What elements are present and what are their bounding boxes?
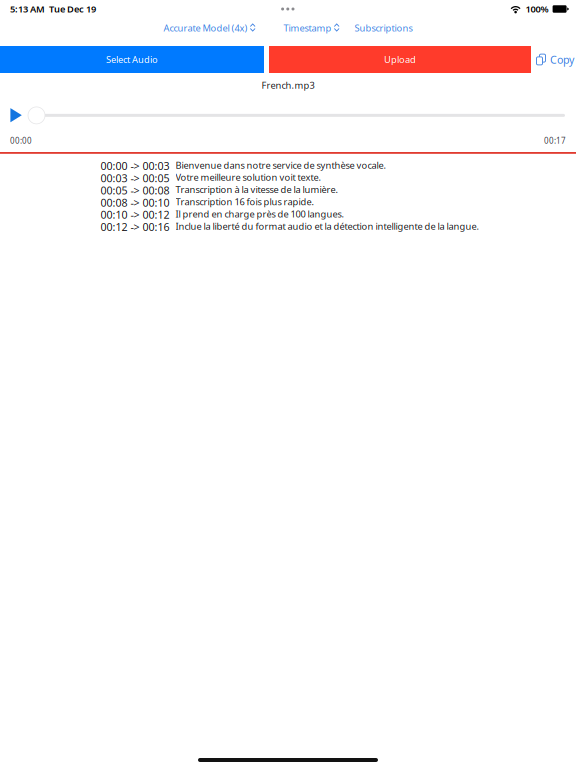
staticText: Transcription 16 fois plus rapide. (175, 195, 314, 208)
staticText: Inclue la liberté du format audio et la … (175, 220, 479, 232)
button[interactable]: 00:12 -> 00:16 (100, 221, 566, 233)
button[interactable]: Timestamp (283, 22, 341, 34)
staticText: French.mp3 (261, 79, 314, 91)
staticText: Transcription à la vitesse de la lumière… (175, 183, 338, 196)
staticText: 00:08 -> 00:10 (100, 195, 169, 210)
staticText: 00:05 -> 00:08 (100, 183, 169, 197)
button[interactable]: 00:10 -> 00:12 (100, 209, 566, 221)
button[interactable]: 00:08 -> 00:10 (100, 196, 566, 209)
staticText: 00:12 -> 00:16 (100, 220, 169, 234)
button[interactable]: 00:00 -> 00:03 (100, 160, 566, 172)
staticText: 100% (526, 3, 549, 15)
button[interactable]: Upload (269, 46, 531, 73)
button[interactable]: Accurate Model (4x) (163, 22, 257, 34)
button[interactable]: Subscriptions (354, 22, 412, 34)
staticText: Accurate Model (4x) (163, 22, 247, 34)
staticText: Il prend en charge près de 100 langues. (175, 208, 344, 220)
staticText: Upload (384, 53, 416, 66)
button[interactable]: Copy (536, 46, 576, 73)
staticText: Bienvenue dans notre service de synthèse… (175, 159, 386, 171)
staticText: Copy (550, 52, 574, 67)
staticText: Subscriptions (354, 22, 412, 34)
button[interactable]: 00:05 -> 00:08 (100, 184, 566, 196)
button[interactable]: Play (0, 106, 22, 124)
staticText: 5:13 AM (10, 3, 45, 15)
button[interactable]: 00:03 -> 00:05 (100, 172, 566, 184)
staticText: Select Audio (106, 53, 158, 66)
staticText: Tue Dec 19 (49, 3, 96, 15)
staticText: 00:03 -> 00:05 (100, 171, 169, 185)
staticText: 00:17 (544, 135, 566, 146)
staticText: 00:00 (10, 135, 32, 146)
staticText: 00:00 -> 00:03 (100, 159, 169, 173)
button[interactable]: Select Audio (0, 46, 264, 73)
staticText: 00:10 -> 00:12 (100, 208, 169, 222)
staticText: Timestamp (283, 22, 331, 34)
staticText: Votre meilleure solution voit texte. (175, 171, 321, 183)
